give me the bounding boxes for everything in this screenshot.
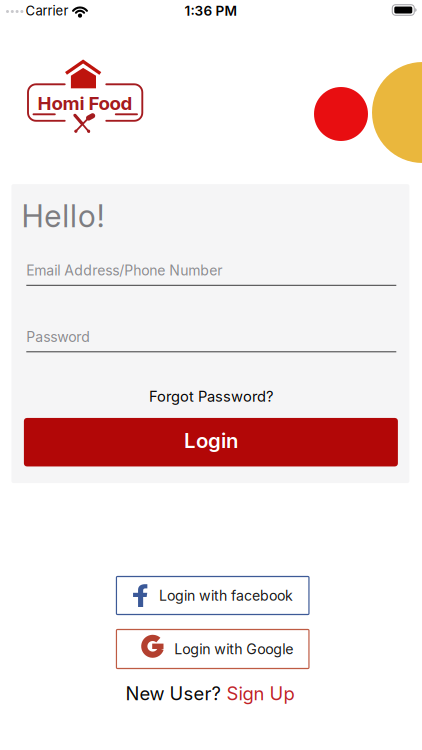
button[interactable]: Password <box>26 322 396 352</box>
staticText: Login with Google <box>174 640 293 657</box>
staticText: 1:36 PM <box>184 2 237 19</box>
staticText: Hello! <box>21 197 105 234</box>
button[interactable]: Login with Google <box>116 629 309 668</box>
staticText: Login <box>184 428 238 453</box>
button[interactable]: Email Address/Phone Number <box>26 256 396 286</box>
staticText: Homi Food <box>37 92 132 114</box>
button[interactable]: Login <box>24 418 398 466</box>
staticText: Password <box>26 328 90 345</box>
staticText: Forgot Password? <box>149 388 273 405</box>
staticText: Login with facebook <box>159 587 293 604</box>
staticText: Sign Up <box>226 682 294 705</box>
button[interactable]: Sign Up <box>226 682 294 705</box>
staticText: Email Address/Phone Number <box>26 262 222 279</box>
button[interactable]: Login with facebook <box>116 576 309 614</box>
staticText: New User? <box>125 682 220 705</box>
staticText: Carrier <box>25 3 68 19</box>
button[interactable]: Forgot Password? <box>149 388 273 405</box>
